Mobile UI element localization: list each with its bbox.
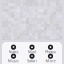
button[interactable]: Photos [41,44,60,53]
button[interactable]: Safari [23,53,41,62]
staticText: Notes [8,49,18,54]
staticText: Mail [28,49,36,54]
staticText: Photos [45,49,56,54]
staticText: More [45,58,55,63]
button[interactable]: Music [4,53,23,62]
button[interactable]: More [41,53,60,62]
staticText: Music [8,58,19,63]
button[interactable]: Notes [4,44,23,53]
button[interactable]: Mail [23,44,41,53]
staticText: Safari [27,58,37,63]
